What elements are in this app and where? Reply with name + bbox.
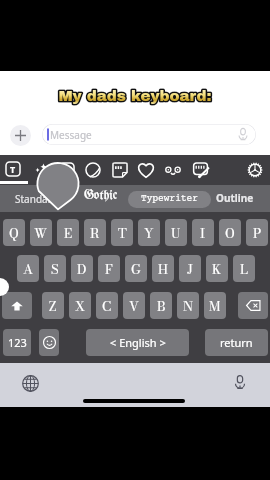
button[interactable]: Emoji xyxy=(165,162,181,178)
button[interactable]: Message xyxy=(42,124,256,145)
button[interactable]: Dictate xyxy=(232,374,248,390)
button[interactable]: L xyxy=(233,255,255,282)
button[interactable]: R xyxy=(84,219,106,246)
button[interactable]: I xyxy=(192,219,214,246)
staticText: S xyxy=(51,259,59,279)
button[interactable]: X xyxy=(69,292,91,319)
button[interactable]: G xyxy=(125,255,147,282)
staticText: K xyxy=(212,259,222,279)
button[interactable]: Text styles xyxy=(6,162,20,176)
button[interactable]: M xyxy=(204,292,226,319)
button[interactable]: A xyxy=(17,255,39,282)
staticText: 123 xyxy=(8,335,27,350)
button[interactable]: Add attachment xyxy=(10,125,31,146)
staticText: A xyxy=(23,259,34,279)
button[interactable]: Typewriter xyxy=(128,191,211,208)
button[interactable]: E xyxy=(57,219,79,246)
staticText: T xyxy=(118,223,127,243)
button[interactable]: H xyxy=(152,255,174,282)
button[interactable]: return xyxy=(205,329,268,356)
button[interactable]: Q xyxy=(3,219,25,246)
button[interactable]: C xyxy=(96,292,118,319)
staticText: X xyxy=(75,296,85,316)
button[interactable]: Z xyxy=(42,292,64,319)
staticText: N xyxy=(183,296,194,316)
staticText: Z xyxy=(49,296,57,316)
staticText: < English > xyxy=(110,335,166,350)
button[interactable]: D xyxy=(71,255,93,282)
button[interactable]: V xyxy=(123,292,145,319)
staticText: F xyxy=(105,259,113,279)
button[interactable]: GIF xyxy=(112,162,128,178)
staticText: E xyxy=(64,223,73,243)
button[interactable]: N xyxy=(177,292,199,319)
button[interactable]: F xyxy=(98,255,120,282)
button[interactable]: space xyxy=(86,329,189,356)
button[interactable]: emoji xyxy=(39,329,59,356)
button[interactable]: Stickers xyxy=(85,162,101,178)
staticText: C xyxy=(102,296,112,316)
button[interactable]: J xyxy=(179,255,201,282)
staticText: Y xyxy=(144,223,154,243)
staticText: My dads keyboard: xyxy=(58,88,212,104)
staticText: J xyxy=(187,259,193,279)
button[interactable]: 123 xyxy=(3,329,31,356)
staticText: B xyxy=(157,296,166,316)
staticText: L xyxy=(240,259,248,279)
staticText: H xyxy=(158,259,168,279)
button[interactable]: P xyxy=(246,219,268,246)
button[interactable]: Standard xyxy=(15,192,58,206)
staticText: U xyxy=(171,223,181,243)
button[interactable]: W xyxy=(30,219,52,246)
button[interactable]: Y xyxy=(138,219,160,246)
button[interactable]: shift xyxy=(2,292,32,319)
staticText: D xyxy=(77,259,87,279)
staticText: M xyxy=(209,296,221,316)
staticText: T xyxy=(10,163,16,175)
button[interactable]: Shapes xyxy=(59,162,75,178)
staticText: O xyxy=(225,223,235,243)
button[interactable]: Settings xyxy=(247,162,263,178)
button[interactable]: O xyxy=(219,219,241,246)
staticText: Q xyxy=(9,223,19,243)
button[interactable]: U xyxy=(165,219,187,246)
button[interactable]: Change language xyxy=(22,375,39,392)
staticText: My dads keyboard: xyxy=(58,88,212,104)
button[interactable]: Draw xyxy=(193,162,209,178)
staticText: return xyxy=(220,335,253,350)
button[interactable]: Favourites xyxy=(138,162,154,178)
staticText: Typewriter xyxy=(141,194,198,205)
button[interactable]: T xyxy=(111,219,133,246)
button[interactable]: Effects xyxy=(32,162,48,178)
button[interactable]: K xyxy=(206,255,228,282)
staticText: G xyxy=(131,259,141,279)
staticText: R xyxy=(90,223,100,243)
staticText: P xyxy=(253,223,262,243)
staticText: V xyxy=(129,296,140,316)
staticText: I xyxy=(200,223,206,243)
staticText: W xyxy=(34,223,48,243)
button[interactable]: Gothic xyxy=(84,189,118,202)
staticText: Message xyxy=(50,128,92,142)
button[interactable]: Outline xyxy=(216,191,254,205)
button[interactable]: B xyxy=(150,292,172,319)
button[interactable]: S xyxy=(44,255,66,282)
button[interactable]: delete xyxy=(238,292,268,319)
